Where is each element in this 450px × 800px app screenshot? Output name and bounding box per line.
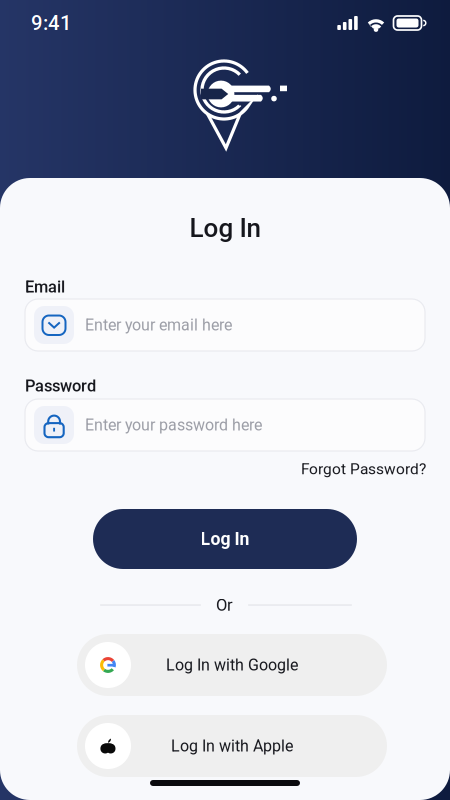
staticText: Password <box>25 376 96 396</box>
button[interactable]: Enter your password here <box>25 399 425 451</box>
staticText: Email <box>25 277 65 297</box>
staticText: Log In <box>200 529 249 549</box>
button[interactable]: Forgot Password? <box>25 460 426 478</box>
staticText: Log In <box>189 213 260 243</box>
staticText: Forgot Password? <box>301 460 426 478</box>
staticText: Enter your password here <box>85 416 262 434</box>
staticText: Enter your email here <box>85 316 232 334</box>
button[interactable]: Enter your email here <box>25 299 425 351</box>
button[interactable]: Log In with Google <box>77 634 387 696</box>
staticText: Log In with Apple <box>171 737 293 755</box>
button[interactable]: Log In <box>93 509 357 569</box>
staticText: 9:41 <box>31 11 72 35</box>
button[interactable]: Log In with Apple <box>77 715 387 777</box>
staticText: Or <box>216 595 233 615</box>
staticText: Log In with Google <box>166 656 298 674</box>
